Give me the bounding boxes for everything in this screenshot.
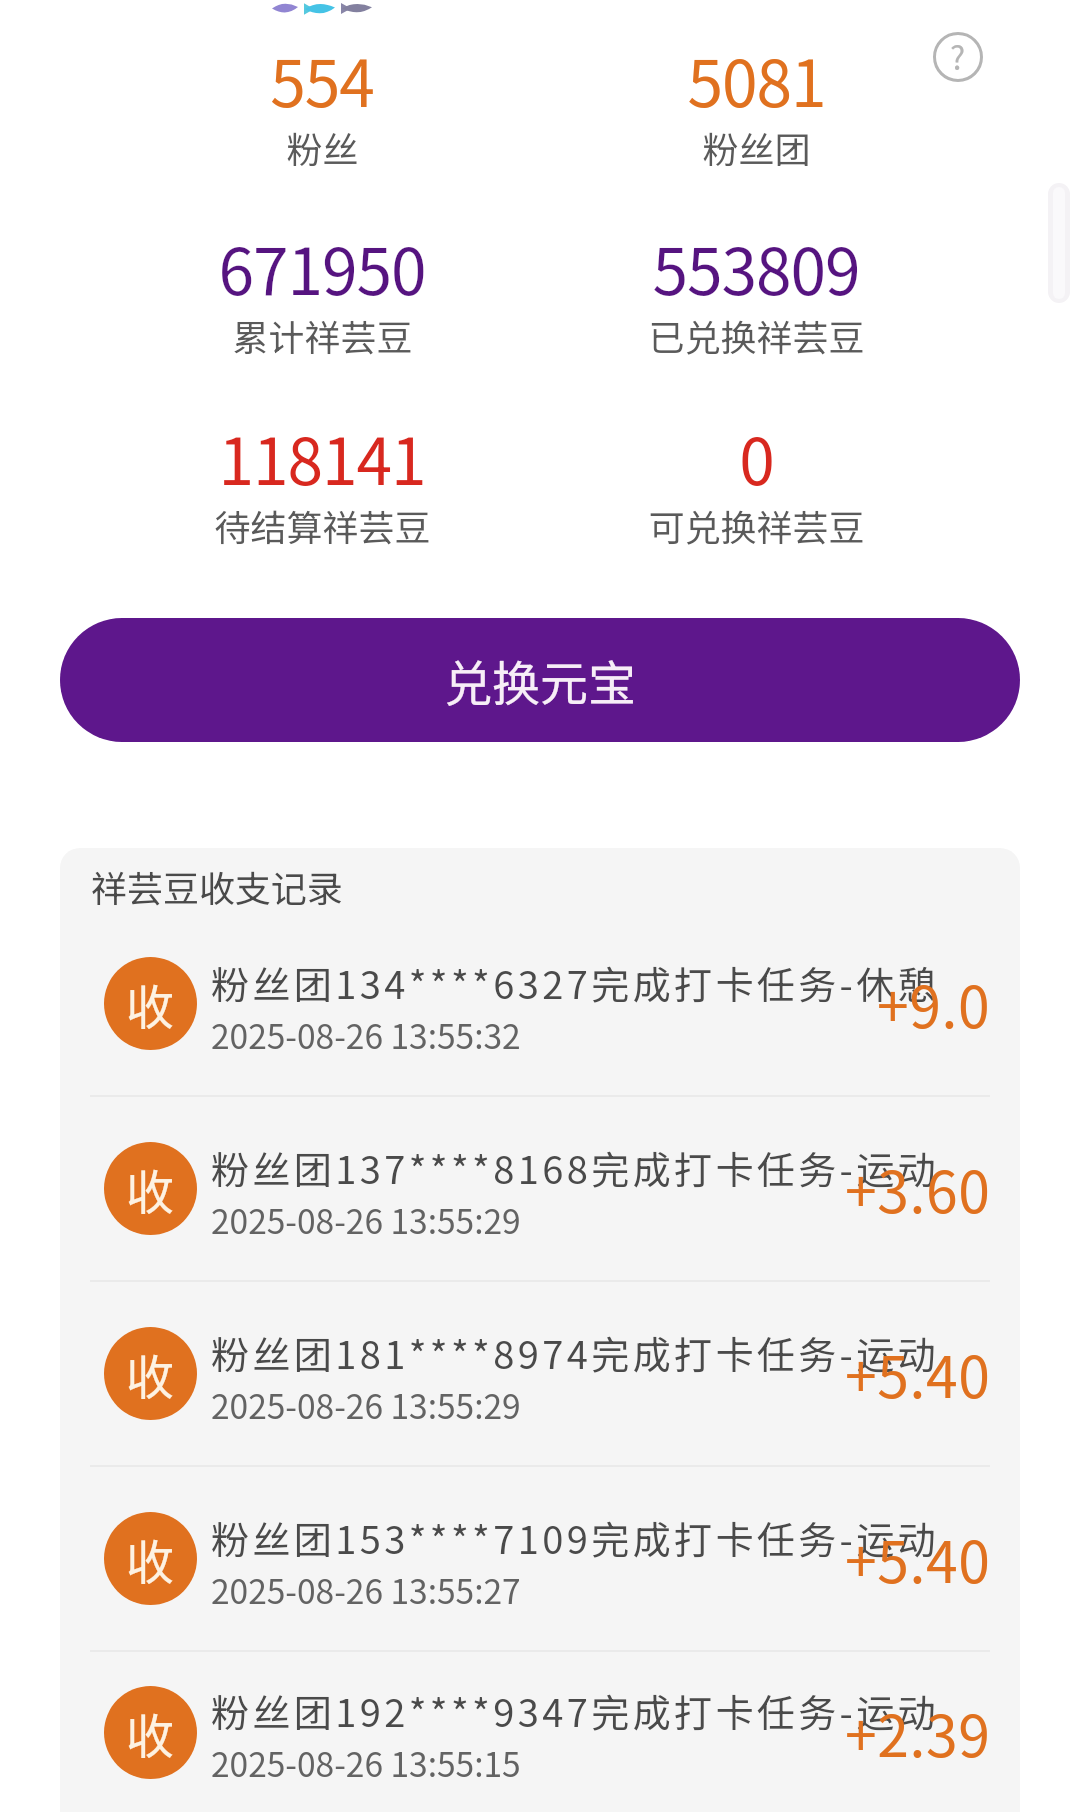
button[interactable]: 收 — [60, 1097, 1020, 1280]
staticText: 5081 — [687, 33, 826, 126]
staticText: 2025-08-26 13:55:29 — [211, 1195, 521, 1244]
staticText: 收 — [126, 969, 175, 1039]
staticText: 粉丝团137****8168完成打卡任务-运动 — [211, 1140, 940, 1195]
staticText: 待结算祥芸豆 — [214, 499, 431, 546]
staticText: +2.39 — [845, 1691, 991, 1774]
staticText: 0 — [739, 411, 774, 504]
staticText: 118141 — [218, 411, 426, 504]
staticText: +5.40 — [845, 1332, 991, 1415]
staticText: 累计祥芸豆 — [232, 309, 413, 356]
staticText: 2025-08-26 13:55:29 — [211, 1380, 521, 1429]
staticText: 2025-08-26 13:55:27 — [211, 1565, 521, 1614]
staticText: 2025-08-26 13:55:15 — [211, 1738, 521, 1787]
staticText: ? — [950, 33, 966, 79]
staticText: 已兑换祥芸豆 — [648, 309, 865, 356]
staticText: 554 — [270, 33, 374, 126]
staticText: 粉丝团 — [702, 121, 811, 168]
button[interactable]: 收 — [60, 1282, 1020, 1465]
staticText: 粉丝 — [286, 121, 359, 168]
staticText: 粉丝团134****6327完成打卡任务-休憩 — [211, 955, 940, 1010]
staticText: +3.60 — [845, 1147, 991, 1230]
staticText: 收 — [126, 1698, 175, 1768]
staticText: 粉丝团181****8974完成打卡任务-运动 — [211, 1325, 940, 1380]
button[interactable]: 收 — [60, 1467, 1020, 1650]
staticText: 收 — [126, 1339, 175, 1409]
button[interactable]: 收 — [60, 912, 1020, 1095]
staticText: 553809 — [652, 221, 860, 314]
staticText: +5.40 — [845, 1517, 991, 1600]
staticText: 粉丝团192****9347完成打卡任务-运动 — [211, 1683, 940, 1738]
staticText: 收 — [126, 1154, 175, 1224]
button[interactable]: 兑换元宝 — [60, 618, 1020, 742]
staticText: 粉丝团153****7109完成打卡任务-运动 — [211, 1510, 940, 1565]
staticText: 2025-08-26 13:55:32 — [211, 1010, 521, 1059]
button[interactable]: Help — [928, 27, 988, 87]
staticText: 收 — [126, 1524, 175, 1594]
staticText: +9.0 — [877, 962, 991, 1045]
staticText: 祥芸豆收支记录 — [91, 860, 344, 912]
staticText: 可兑换祥芸豆 — [648, 499, 865, 546]
button[interactable]: 收 — [60, 1652, 1020, 1812]
staticText: 671950 — [218, 221, 426, 314]
staticText: 兑换元宝 — [444, 645, 637, 715]
